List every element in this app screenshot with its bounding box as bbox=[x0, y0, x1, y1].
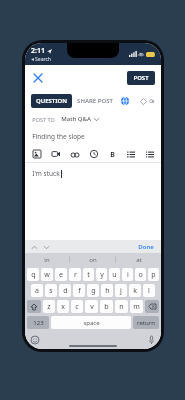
button[interactable]: z bbox=[43, 300, 55, 313]
button[interactable]: Backspace bbox=[145, 300, 159, 313]
button[interactable]: Shift bbox=[27, 300, 41, 313]
button[interactable]: e bbox=[55, 268, 67, 281]
button[interactable]: in bbox=[25, 253, 69, 266]
button[interactable]: Bullet list bbox=[126, 149, 136, 159]
staticText: on bbox=[89, 256, 97, 264]
staticText: f bbox=[78, 286, 81, 296]
staticText: 123 bbox=[33, 319, 44, 327]
button[interactable]: SHARE POST bbox=[72, 94, 118, 108]
button[interactable]: u bbox=[109, 268, 120, 281]
button[interactable]: Close bbox=[30, 70, 46, 86]
button[interactable]: POST bbox=[127, 71, 155, 85]
staticText: l bbox=[148, 286, 150, 296]
staticText: e bbox=[59, 270, 63, 280]
staticText: i bbox=[127, 270, 129, 280]
staticText: 2:11 bbox=[31, 46, 45, 56]
button[interactable]: l bbox=[143, 284, 155, 297]
staticText: o bbox=[138, 270, 143, 280]
button[interactable]: QUESTION bbox=[31, 94, 72, 108]
button[interactable]: y bbox=[96, 268, 107, 281]
button[interactable]: q bbox=[27, 268, 39, 281]
button[interactable]: m bbox=[130, 300, 143, 313]
button[interactable]: Math Q&A bbox=[61, 115, 99, 123]
staticText: z bbox=[47, 302, 51, 312]
button[interactable]: x bbox=[57, 300, 69, 313]
button[interactable]: d bbox=[59, 284, 71, 297]
staticText: n bbox=[119, 302, 124, 312]
staticText: POST bbox=[133, 74, 149, 82]
staticText: w bbox=[44, 270, 50, 280]
button[interactable]: c bbox=[71, 300, 83, 313]
staticText: t bbox=[87, 270, 90, 280]
button[interactable]: k bbox=[129, 284, 141, 297]
staticText: d bbox=[63, 286, 68, 296]
button[interactable]: g bbox=[87, 284, 99, 297]
button[interactable]: n bbox=[115, 300, 128, 313]
button[interactable]: Next bbox=[42, 243, 50, 251]
button[interactable]: 123 bbox=[27, 316, 49, 329]
staticText: j bbox=[120, 286, 122, 296]
staticText: m bbox=[133, 302, 140, 312]
staticText: b bbox=[104, 302, 109, 312]
staticText: in bbox=[44, 256, 50, 264]
button[interactable]: Numbered list bbox=[145, 149, 154, 159]
button[interactable]: o bbox=[135, 268, 146, 281]
button[interactable]: w bbox=[41, 268, 53, 281]
staticText: Math Q&A bbox=[61, 115, 91, 123]
button[interactable]: Audience public bbox=[118, 94, 132, 108]
staticText: u bbox=[112, 270, 117, 280]
button[interactable]: a bbox=[31, 284, 43, 297]
staticText: I'm stuck bbox=[32, 169, 60, 178]
button[interactable]: Previous bbox=[30, 243, 38, 251]
button[interactable]: h bbox=[101, 284, 113, 297]
staticText: Search bbox=[35, 56, 51, 63]
staticText: a bbox=[35, 286, 39, 296]
button[interactable]: Insert emoji bbox=[89, 149, 99, 159]
staticText: POST TO bbox=[32, 116, 55, 123]
staticText: v bbox=[90, 302, 94, 312]
staticText: q bbox=[31, 270, 36, 280]
staticText: 0 bbox=[149, 97, 153, 105]
staticText: return bbox=[137, 319, 155, 327]
button[interactable]: Done bbox=[136, 241, 156, 253]
button[interactable]: space bbox=[51, 316, 131, 329]
button[interactable]: t bbox=[83, 268, 94, 281]
button[interactable]: on bbox=[70, 253, 115, 266]
button[interactable]: Insert image bbox=[32, 149, 42, 159]
staticText: s bbox=[49, 286, 53, 296]
staticText: r bbox=[74, 270, 77, 280]
staticText: space bbox=[83, 319, 100, 327]
button[interactable]: b bbox=[100, 300, 113, 313]
staticText: B bbox=[110, 150, 115, 159]
staticText: p bbox=[151, 270, 156, 280]
button[interactable]: v bbox=[85, 300, 98, 313]
button[interactable]: i bbox=[122, 268, 133, 281]
button[interactable]: f bbox=[73, 284, 85, 297]
button[interactable]: B bbox=[108, 150, 117, 159]
button[interactable]: Insert link bbox=[70, 149, 80, 159]
button[interactable]: p bbox=[148, 268, 159, 281]
staticText: c bbox=[75, 302, 79, 312]
staticText: y bbox=[100, 270, 104, 280]
staticText: QUESTION bbox=[36, 97, 67, 105]
button[interactable]: at bbox=[116, 253, 161, 266]
button[interactable]: Dictation bbox=[146, 335, 156, 345]
button[interactable]: 0 bbox=[138, 95, 155, 107]
button[interactable]: return bbox=[133, 316, 159, 329]
button[interactable]: j bbox=[115, 284, 127, 297]
button[interactable]: r bbox=[69, 268, 81, 281]
staticText: at bbox=[136, 256, 142, 264]
staticText: x bbox=[61, 302, 65, 312]
staticText: Done bbox=[138, 243, 154, 251]
button[interactable]: s bbox=[45, 284, 57, 297]
button[interactable]: Insert video bbox=[51, 149, 61, 159]
button[interactable]: Emoji bbox=[30, 335, 40, 345]
staticText: SHARE POST bbox=[77, 97, 113, 105]
staticText: Finding the slope bbox=[32, 132, 85, 141]
staticText: h bbox=[105, 286, 110, 296]
staticText: g bbox=[91, 286, 96, 296]
staticText: k bbox=[133, 286, 137, 296]
